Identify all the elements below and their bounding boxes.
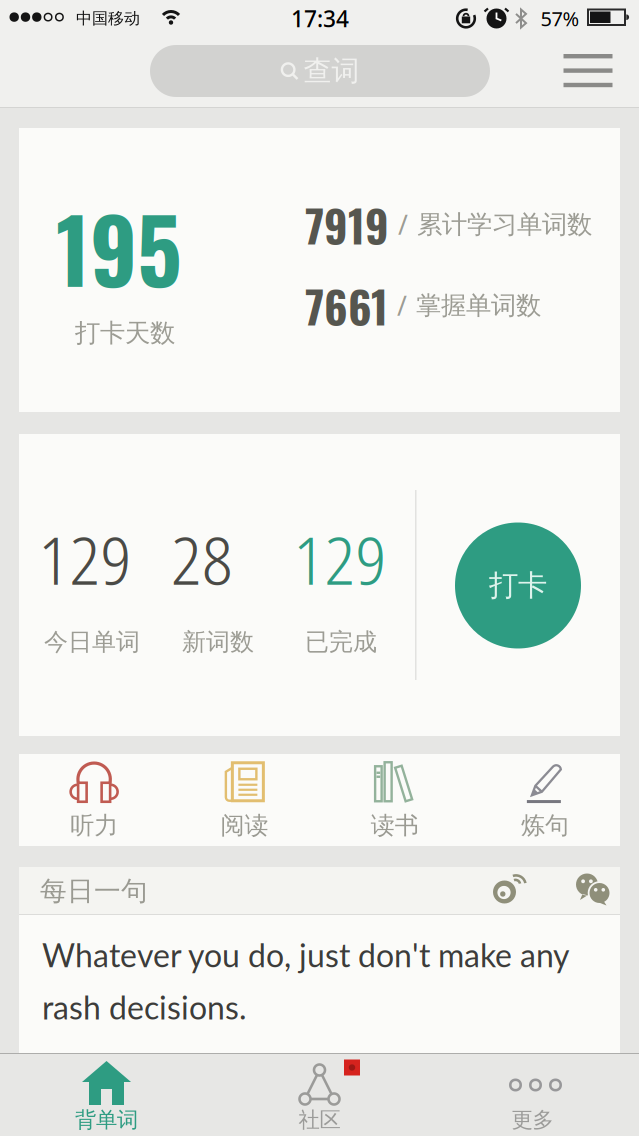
staticText: 每日一句	[40, 875, 148, 907]
staticText: 掌握单词数	[416, 290, 541, 321]
staticText: 7661	[305, 273, 388, 338]
staticText: 更多	[511, 1107, 553, 1133]
button[interactable]: 阅读	[169, 754, 319, 846]
staticText: 累计学习单词数	[417, 209, 592, 240]
button[interactable]: 读书	[319, 754, 470, 846]
staticText: 中国移动	[76, 9, 140, 28]
staticText: 打卡	[489, 567, 547, 603]
staticText: 195	[56, 182, 182, 313]
staticText: 今日单词	[44, 627, 140, 657]
button[interactable]: 更多	[426, 1053, 639, 1136]
staticText: Whatever you do, just don't make any	[42, 936, 569, 974]
staticText: /	[398, 207, 408, 242]
staticText: 读书	[371, 811, 419, 840]
staticText: 129	[38, 514, 131, 604]
staticText: rash decisions.	[42, 988, 247, 1026]
button[interactable]: 社区	[213, 1053, 426, 1136]
staticText: 阅读	[220, 811, 268, 840]
button[interactable]: Share to WeChat	[575, 874, 610, 906]
staticText: 社区	[298, 1107, 340, 1133]
staticText: 炼句	[521, 811, 569, 840]
staticText: 57%	[540, 5, 579, 32]
button[interactable]: 炼句	[470, 754, 620, 846]
staticText: 7919	[305, 192, 389, 257]
staticText: 新词数	[182, 627, 254, 657]
staticText: 查词	[303, 54, 359, 88]
button[interactable]: 背单词	[0, 1053, 213, 1136]
staticText: 17:34	[291, 3, 349, 33]
button[interactable]: 听力	[19, 754, 169, 846]
staticText: /	[397, 288, 407, 323]
staticText: 打卡天数	[75, 317, 175, 348]
staticText: 129	[293, 514, 386, 604]
staticText: 28	[171, 514, 233, 604]
staticText: 背单词	[75, 1107, 138, 1133]
button[interactable]: 打卡	[455, 522, 581, 648]
staticText: 已完成	[305, 627, 377, 657]
button[interactable]: 查词	[150, 45, 490, 97]
button[interactable]: Share to Weibo	[493, 874, 527, 904]
staticText: 听力	[70, 811, 118, 840]
button[interactable]: Menu	[563, 54, 612, 88]
